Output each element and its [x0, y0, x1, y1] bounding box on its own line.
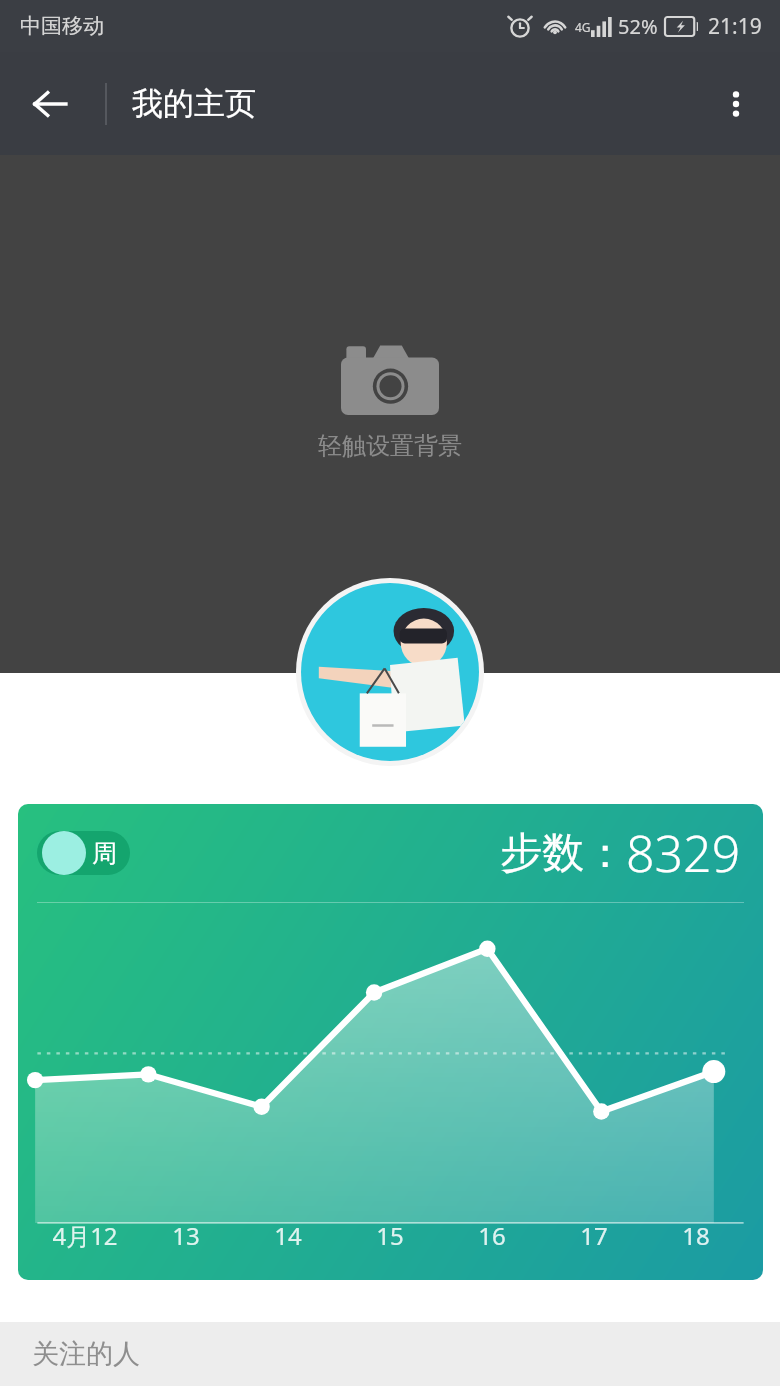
staticText: 步数：	[500, 827, 626, 880]
staticText: 16	[478, 1219, 506, 1252]
staticText: 14	[274, 1219, 302, 1252]
staticText: 我的主页	[132, 84, 256, 123]
button[interactable]: More options	[700, 68, 772, 140]
staticText: 21:19	[708, 12, 762, 41]
button[interactable]: Profile photo	[296, 578, 484, 766]
staticText: 52%	[618, 13, 658, 40]
button[interactable]: 周	[37, 831, 130, 875]
staticText: 15	[376, 1219, 404, 1252]
staticText: 周	[92, 838, 117, 869]
staticText: 4G	[575, 19, 591, 35]
button[interactable]: Back	[14, 68, 86, 140]
staticText: 13	[172, 1219, 200, 1252]
button[interactable]: Set background image	[0, 155, 780, 673]
button[interactable]: 周	[18, 804, 763, 1280]
staticText: 18	[682, 1219, 710, 1252]
staticText: 关注的人	[32, 1337, 140, 1371]
staticText: 8329	[626, 819, 741, 887]
button[interactable]: 关注的人	[0, 1322, 780, 1386]
staticText: 轻触设置背景	[318, 431, 462, 461]
staticText: 17	[580, 1219, 608, 1252]
staticText: 中国移动	[20, 13, 104, 39]
staticText: 4月12	[52, 1219, 118, 1252]
